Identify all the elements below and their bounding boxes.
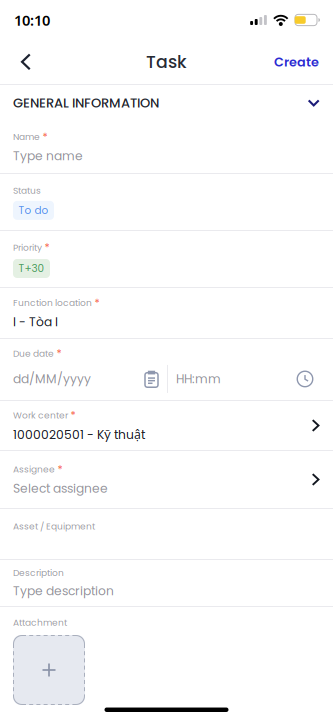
button[interactable]: HH:mm [176, 366, 313, 392]
staticText: Assignee [13, 463, 55, 476]
staticText: Priority [13, 241, 42, 254]
staticText: * [44, 240, 49, 255]
button[interactable]: Description [0, 560, 333, 607]
staticText: Work center [13, 409, 68, 422]
staticText: * [42, 129, 47, 144]
staticText: Type name [13, 147, 83, 165]
button[interactable]: Add attachment [13, 635, 85, 705]
staticText: Create [274, 53, 319, 71]
staticText: Name [13, 131, 40, 143]
staticText: Description [13, 567, 64, 579]
button[interactable]: Priority [0, 231, 333, 288]
button[interactable]: Asset / Equipment [0, 509, 333, 560]
button[interactable]: GENERAL INFORMATION [0, 85, 333, 121]
staticText: dd/MM/yyyy [13, 370, 91, 388]
staticText: * [57, 462, 62, 477]
button[interactable]: Name [0, 121, 333, 174]
staticText: Function location [13, 297, 92, 309]
staticText: 10:10 [14, 10, 50, 30]
staticText: Type description [13, 582, 114, 599]
staticText: Asset / Equipment [13, 520, 95, 533]
staticText: GENERAL INFORMATION [13, 94, 159, 112]
button[interactable]: Create [264, 40, 329, 84]
button[interactable]: Assignee [0, 451, 333, 509]
staticText: Attachment [13, 616, 67, 629]
staticText: To do [18, 203, 48, 218]
staticText: Task [146, 50, 187, 74]
staticText: Status [13, 184, 41, 197]
button[interactable]: Function location [0, 288, 333, 339]
staticText: * [94, 295, 99, 310]
staticText: HH:mm [176, 370, 221, 388]
staticText: * [56, 346, 61, 361]
staticText: * [70, 408, 75, 423]
button[interactable]: dd/MM/yyyy [13, 366, 159, 392]
button[interactable]: Status [0, 174, 333, 231]
button[interactable]: Work center [0, 401, 333, 451]
staticText: Due date [13, 347, 54, 360]
button[interactable]: Back [4, 40, 48, 84]
staticText: I - Tòa I [13, 313, 58, 331]
staticText: Select assignee [13, 480, 108, 497]
staticText: 1000020501 - Kỹ thuật [13, 426, 145, 443]
staticText: T+30 [18, 261, 44, 276]
